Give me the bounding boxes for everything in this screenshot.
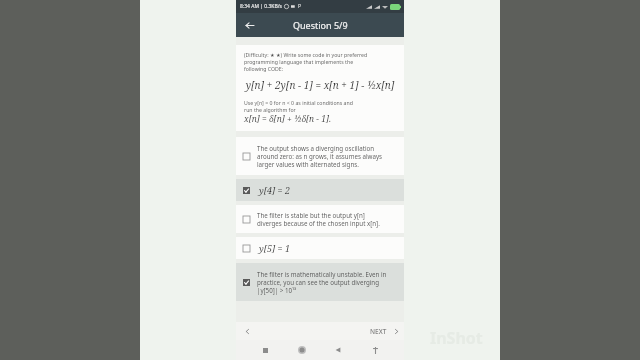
- button[interactable]: Back: [330, 342, 346, 358]
- staticText: InShot: [430, 327, 483, 349]
- staticText: x[n] = δ[n] + ½δ[n − 1].: [244, 113, 332, 125]
- staticText: y[4] = 2: [259, 184, 291, 196]
- staticText: around zero: as n grows, it assumes alwa…: [257, 152, 383, 160]
- button[interactable]: Assistant: [367, 342, 383, 358]
- staticText: NEXT: [370, 327, 387, 336]
- staticText: y[5] = 1: [259, 242, 291, 254]
- button[interactable]: Home: [294, 342, 310, 358]
- staticText: y[n] + 2y[n − 1] = x[n + 1] − ½x[n]: [244, 78, 396, 92]
- staticText: practice, you can see the output divergi…: [257, 278, 379, 286]
- staticText: |y[50]| > 10¹³: [257, 286, 297, 294]
- staticText: Use y[n] = 0 for n < 0 as initial condit…: [244, 99, 353, 106]
- button[interactable]: NEXT: [370, 327, 400, 336]
- staticText: diverges because of the chosen input x[n…: [257, 219, 380, 227]
- staticText: Question 5/9: [293, 19, 348, 31]
- button[interactable]: Back: [240, 16, 258, 34]
- button[interactable]: Previous: [240, 324, 254, 338]
- staticText: programming language that implements the: [244, 58, 354, 65]
- staticText: larger values with alternated signs.: [257, 160, 359, 168]
- staticText: run the algorithm for: [244, 106, 296, 113]
- staticText: The filter is mathematically unstable. E…: [257, 270, 387, 278]
- staticText: (Difficulty: ★ ★) Write some code in you…: [244, 51, 368, 58]
- button[interactable]: y[4] = 2: [236, 179, 404, 201]
- button[interactable]: y[5] = 1: [236, 237, 404, 259]
- button[interactable]: The filter is stable but the output y[n]: [236, 205, 404, 233]
- staticText: 8:34 AM | 0.3KB/s: [240, 3, 282, 10]
- staticText: P: [298, 3, 302, 10]
- button[interactable]: Recents: [257, 342, 273, 358]
- staticText: following CODE:: [244, 65, 284, 72]
- button[interactable]: The output shows a diverging oscillation: [236, 137, 404, 175]
- button[interactable]: The filter is mathematically unstable. E…: [236, 263, 404, 301]
- staticText: The filter is stable but the output y[n]: [257, 211, 365, 219]
- staticText: The output shows a diverging oscillation: [257, 144, 375, 152]
